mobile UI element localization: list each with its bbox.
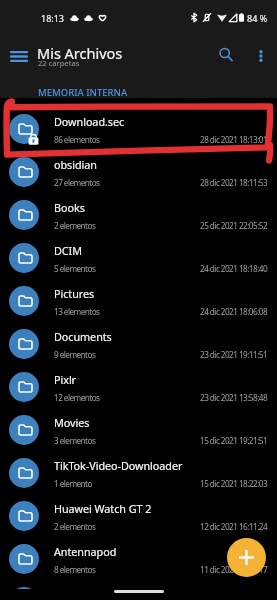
- staticText: obsidian: [54, 157, 97, 172]
- button[interactable]: Documents: [0, 322, 277, 365]
- button[interactable]: Download.sec: [0, 107, 277, 150]
- button[interactable]: Open navigation menu: [0, 37, 38, 75]
- staticText: 28 dic 2021 18:13:01: [200, 134, 268, 145]
- staticText: 5 elementos: [54, 263, 96, 274]
- staticText: 3 elementos: [54, 435, 96, 446]
- staticText: 1 elemento: [54, 478, 92, 489]
- button[interactable]: Huawei Watch GT 2: [0, 494, 277, 537]
- staticText: 12 dic 2021 16:11:24: [200, 521, 268, 532]
- staticText: 28 dic 2021 18:11:53: [200, 177, 268, 188]
- button[interactable]: Search: [208, 37, 246, 75]
- staticText: 25 dic 2021 22:05:52: [200, 220, 268, 231]
- staticText: 86 elementos: [54, 134, 100, 145]
- staticText: MEMORIA INTERNA: [38, 86, 128, 99]
- button[interactable]: Movies: [0, 408, 277, 451]
- staticText: DCIM: [54, 243, 82, 258]
- staticText: Pixlr: [54, 372, 77, 387]
- staticText: 12 elementos: [54, 392, 100, 403]
- staticText: 23 dic 2021 13:58:48: [200, 392, 268, 403]
- staticText: 15 dic 2021 19:21:51: [200, 435, 268, 446]
- button[interactable]: Pixlr: [0, 365, 277, 408]
- button[interactable]: TikTok-Video-Downloader: [0, 451, 277, 494]
- staticText: 84 %: [247, 12, 268, 24]
- staticText: 11 dic 2021 17:33:17: [200, 564, 268, 575]
- staticText: 22 carpetas: [38, 58, 80, 68]
- staticText: 27 elementos: [54, 177, 100, 188]
- staticText: 8 elementos: [54, 564, 96, 575]
- staticText: Huawei Watch GT 2: [54, 501, 152, 516]
- staticText: Movies: [54, 415, 90, 430]
- staticText: 2 elementos: [54, 521, 96, 532]
- staticText: 24 dic 2021 18:06:08: [200, 306, 268, 317]
- staticText: 15 dic 2021 18:22:03: [200, 478, 268, 489]
- staticText: 9 elementos: [54, 349, 96, 360]
- staticText: 18:13: [41, 12, 65, 24]
- button[interactable]: DCIM: [0, 236, 277, 279]
- button[interactable]: Pictures: [0, 279, 277, 322]
- staticText: 2 elementos: [54, 220, 96, 231]
- staticText: 13 elementos: [54, 306, 100, 317]
- staticText: 24 dic 2021 18:18:40: [200, 263, 268, 274]
- staticText: TikTok-Video-Downloader: [54, 458, 183, 473]
- staticText: Pictures: [54, 286, 95, 301]
- button[interactable]: Antennapod: [0, 537, 277, 580]
- button[interactable]: Alarms: [0, 580, 277, 600]
- staticText: Antennapod: [54, 544, 117, 559]
- button[interactable]: Create: [227, 538, 266, 577]
- staticText: Mis Archivos: [37, 43, 123, 63]
- staticText: Books: [54, 200, 85, 215]
- staticText: Download.sec: [54, 114, 125, 129]
- button[interactable]: Books: [0, 193, 277, 236]
- button[interactable]: obsidian: [0, 150, 277, 193]
- staticText: Documents: [54, 329, 112, 344]
- button[interactable]: More options: [245, 40, 277, 72]
- staticText: 23 dic 2021 19:11:51: [200, 349, 268, 360]
